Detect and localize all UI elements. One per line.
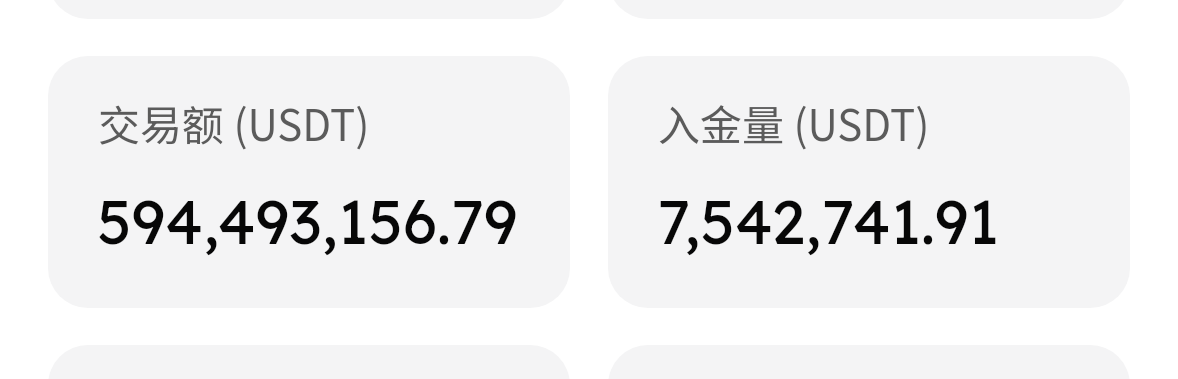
button[interactable]	[48, 56, 570, 308]
staticText: 交易额 (USDT)	[98, 92, 370, 153]
staticText: 594,493,156.79	[97, 183, 518, 259]
staticText: 入金量 (USDT)	[658, 92, 930, 153]
button[interactable]	[608, 56, 1130, 308]
staticText: 7,542,741.91	[657, 183, 1000, 259]
